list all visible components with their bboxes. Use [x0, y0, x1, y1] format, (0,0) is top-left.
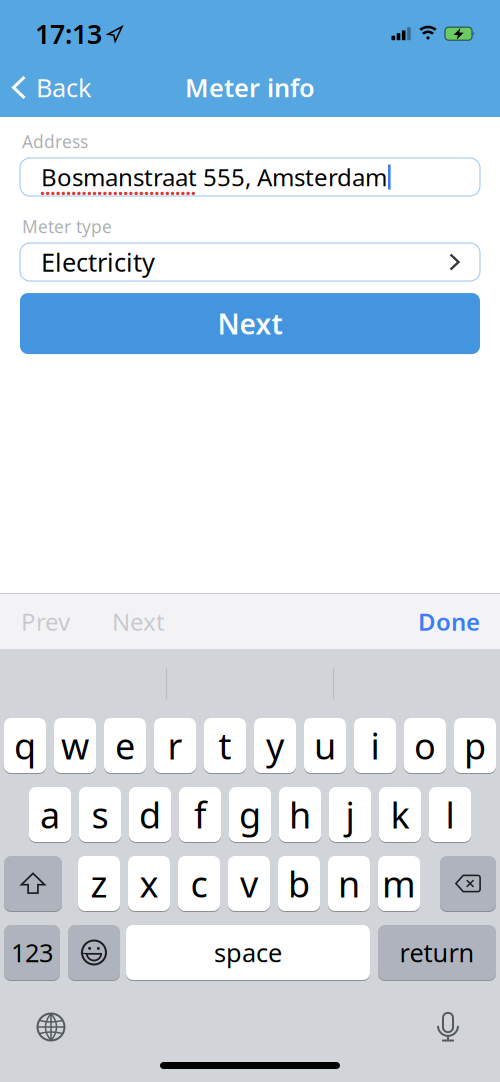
button[interactable]: u — [304, 718, 346, 773]
button[interactable]: o — [404, 718, 446, 773]
staticText: 555, Amsterdam — [197, 161, 387, 193]
staticText: Bosmanstraat — [41, 161, 197, 193]
staticText: Done — [418, 606, 480, 637]
button[interactable]: Bosmanstraat — [20, 158, 480, 196]
button[interactable]: x — [128, 856, 170, 911]
button[interactable]: y — [254, 718, 296, 773]
staticText: Prev — [21, 606, 70, 637]
button[interactable]: m — [378, 856, 420, 911]
staticText: x — [139, 860, 158, 907]
button[interactable]: j — [329, 787, 371, 842]
button[interactable]: w — [54, 718, 96, 773]
button[interactable]: Next — [70, 606, 165, 637]
staticText: n — [338, 860, 360, 907]
button[interactable]: a — [29, 787, 71, 842]
button[interactable]: Shift — [4, 856, 62, 911]
button[interactable]: e — [104, 718, 146, 773]
staticText: v — [240, 860, 258, 907]
button[interactable]: space — [126, 925, 370, 980]
staticText: g — [239, 791, 261, 838]
staticText: 17:13 — [35, 16, 102, 51]
staticText: p — [464, 722, 486, 769]
button[interactable]: Next — [20, 293, 480, 354]
staticText: Next — [217, 305, 282, 342]
staticText: Electricity — [41, 245, 155, 279]
staticText: Next — [112, 606, 165, 637]
staticText: r — [167, 722, 182, 769]
staticText: Meter type — [22, 215, 112, 238]
button[interactable]: Back — [12, 71, 92, 104]
button[interactable]: k — [379, 787, 421, 842]
staticText: return — [399, 936, 474, 969]
staticText: y — [266, 722, 284, 769]
staticText: t — [218, 722, 231, 769]
staticText: i — [370, 722, 379, 769]
button[interactable]: r — [154, 718, 196, 773]
staticText: Back — [36, 71, 92, 104]
button[interactable]: c — [178, 856, 220, 911]
button[interactable]: h — [279, 787, 321, 842]
staticText: d — [139, 791, 161, 838]
staticText: o — [414, 722, 436, 769]
button[interactable]: Dictation — [436, 1012, 460, 1041]
staticText: m — [382, 860, 416, 907]
button[interactable]: 123 — [4, 925, 60, 980]
button[interactable]: g — [229, 787, 271, 842]
button[interactable]: Electricity — [20, 243, 480, 281]
staticText: h — [289, 791, 311, 838]
button[interactable]: t — [204, 718, 246, 773]
button[interactable]: i — [354, 718, 396, 773]
staticText: space — [214, 936, 282, 969]
button[interactable]: l — [429, 787, 471, 842]
button[interactable]: s — [79, 787, 121, 842]
button[interactable]: q — [4, 718, 46, 773]
staticText: j — [345, 791, 354, 838]
button[interactable]: Done — [418, 606, 480, 637]
staticText: Address — [22, 130, 88, 153]
button[interactable]: d — [129, 787, 171, 842]
button[interactable]: Next keyboard — [36, 1012, 66, 1042]
button[interactable]: b — [278, 856, 320, 911]
button[interactable]: p — [454, 718, 496, 773]
button[interactable]: z — [78, 856, 120, 911]
staticText: b — [288, 860, 310, 907]
staticText: c — [190, 860, 207, 907]
staticText: l — [445, 791, 454, 838]
button[interactable]: Emoji — [68, 925, 120, 980]
staticText: q — [14, 722, 36, 769]
staticText: f — [194, 791, 206, 838]
staticText: Meter info — [185, 71, 315, 104]
staticText: w — [61, 722, 89, 769]
staticText: k — [390, 791, 409, 838]
staticText: u — [314, 722, 336, 769]
button[interactable]: f — [179, 787, 221, 842]
staticText: 123 — [11, 936, 53, 969]
staticText: z — [90, 860, 107, 907]
staticText: s — [91, 791, 108, 838]
staticText: a — [40, 791, 60, 838]
staticText: e — [115, 722, 135, 769]
button[interactable]: return — [378, 925, 496, 980]
button[interactable]: Prev — [21, 606, 70, 637]
button[interactable]: v — [228, 856, 270, 911]
button[interactable]: n — [328, 856, 370, 911]
button[interactable]: Delete — [440, 856, 496, 911]
